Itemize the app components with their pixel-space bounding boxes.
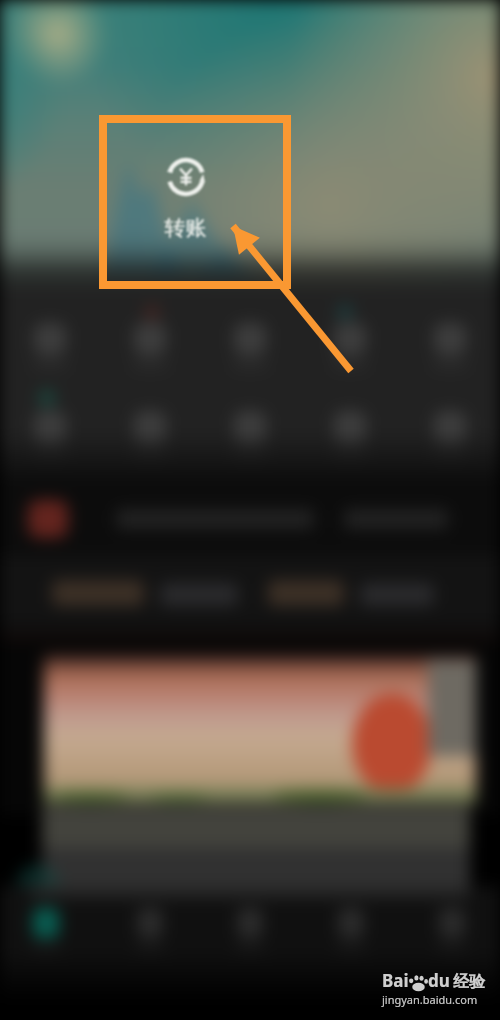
staticText: du (428, 969, 450, 992)
staticText: jingyan.baidu.com (382, 992, 478, 1007)
other: 转账 (164, 155, 208, 199)
staticText: 经验 (453, 972, 485, 992)
button[interactable]: 转账 (145, 155, 226, 241)
staticText: 转账 (145, 215, 226, 241)
staticText: Bai (382, 969, 409, 992)
